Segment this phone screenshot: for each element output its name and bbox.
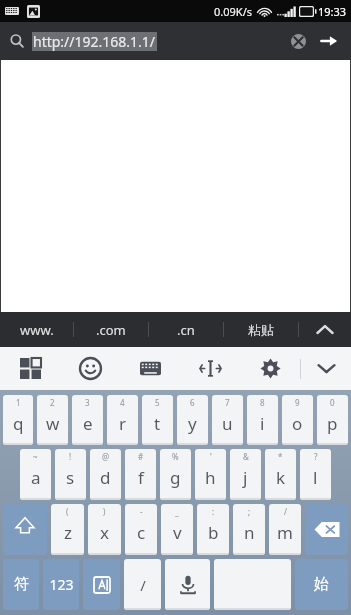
- button[interactable]: c: [125, 504, 157, 555]
- button[interactable]: Expand suggestions: [299, 312, 351, 347]
- button[interactable]: Backspace: [305, 504, 348, 555]
- button[interactable]: f: [125, 449, 156, 500]
- button[interactable]: Go: [313, 25, 345, 57]
- button[interactable]: v: [161, 504, 193, 555]
- button[interactable]: p: [317, 395, 348, 445]
- button[interactable]: y: [177, 395, 208, 445]
- button[interactable]: 123: [43, 559, 79, 610]
- button[interactable]: Switch language: [83, 559, 120, 610]
- staticText: x: [100, 521, 109, 544]
- staticText: 3: [85, 397, 90, 408]
- staticText: b: [208, 521, 219, 544]
- button[interactable]: n: [233, 504, 265, 555]
- staticText: 0: [330, 397, 335, 408]
- staticText: f: [138, 466, 144, 489]
- staticText: 粘贴: [248, 322, 274, 338]
- staticText: r: [119, 412, 127, 435]
- button[interactable]: r: [107, 395, 138, 445]
- button[interactable]: .cn: [149, 312, 223, 347]
- staticText: www.: [20, 321, 54, 339]
- staticText: 9: [295, 397, 300, 408]
- staticText: v: [173, 521, 182, 544]
- staticText: k: [276, 466, 286, 489]
- button[interactable]: j: [230, 449, 261, 500]
- button[interactable]: Shift: [3, 504, 47, 555]
- staticText: ;: [248, 506, 251, 517]
- button[interactable]: Settings: [240, 347, 300, 390]
- staticText: ?: [314, 451, 318, 462]
- staticText: *: [278, 451, 283, 462]
- button[interactable]: Clear: [283, 26, 313, 56]
- staticText: :: [212, 506, 215, 517]
- staticText: u: [222, 412, 233, 435]
- staticText: y: [188, 412, 197, 435]
- staticText: 1: [16, 397, 21, 408]
- staticText: .cn: [177, 321, 195, 339]
- button[interactable]: t: [142, 395, 173, 445]
- staticText: 0.09K/s: [214, 4, 252, 19]
- staticText: /: [284, 506, 287, 517]
- staticText: (: [66, 506, 69, 517]
- staticText: ): [103, 506, 106, 517]
- staticText: c: [137, 521, 146, 544]
- button[interactable]: e: [72, 395, 103, 445]
- staticText: %: [172, 451, 179, 462]
- button[interactable]: q: [3, 395, 33, 445]
- button[interactable]: 始: [295, 559, 348, 610]
- button[interactable]: Emoji: [60, 347, 120, 390]
- button[interactable]: Apps: [0, 347, 60, 390]
- staticText: g: [170, 466, 181, 489]
- button[interactable]: l: [300, 449, 331, 500]
- staticText: &: [243, 451, 249, 462]
- button[interactable]: .com: [74, 312, 148, 347]
- staticText: 8: [260, 397, 265, 408]
- button[interactable]: m: [269, 504, 301, 555]
- button[interactable]: u: [212, 395, 243, 445]
- button[interactable]: 粘贴: [224, 312, 298, 347]
- button[interactable]: k: [265, 449, 296, 500]
- button[interactable]: Keyboard layout: [120, 347, 180, 390]
- staticText: @: [102, 451, 110, 462]
- staticText: n: [244, 521, 255, 544]
- staticText: s: [66, 466, 75, 489]
- button[interactable]: a: [20, 449, 51, 500]
- staticText: w: [46, 412, 60, 435]
- button[interactable]: i: [247, 395, 278, 445]
- staticText: 2: [50, 397, 55, 408]
- button[interactable]: x: [88, 504, 121, 555]
- staticText: -: [140, 506, 143, 517]
- staticText: p: [327, 412, 338, 435]
- button[interactable]: o: [282, 395, 313, 445]
- staticText: e: [83, 412, 93, 435]
- button[interactable]: Space: [214, 559, 291, 610]
- button[interactable]: 符: [3, 559, 39, 610]
- button[interactable]: g: [160, 449, 191, 500]
- button[interactable]: www.: [0, 312, 73, 347]
- button[interactable]: Hide keyboard: [301, 347, 351, 390]
- button[interactable]: Move cursor: [180, 347, 240, 390]
- staticText: a: [31, 466, 41, 489]
- staticText: /: [140, 575, 146, 595]
- button[interactable]: h: [195, 449, 226, 500]
- staticText: j: [243, 466, 248, 489]
- staticText: .com: [96, 321, 126, 339]
- staticText: ': [210, 451, 212, 462]
- button[interactable]: /: [124, 559, 161, 610]
- button[interactable]: Voice input: [165, 559, 210, 610]
- staticText: m: [277, 521, 293, 544]
- staticText: _: [175, 506, 179, 517]
- staticText: 符: [14, 575, 29, 594]
- button[interactable]: d: [90, 449, 121, 500]
- staticText: l: [313, 466, 318, 489]
- button[interactable]: b: [197, 504, 229, 555]
- staticText: 始: [314, 575, 329, 594]
- staticText: ~: [33, 451, 38, 462]
- staticText: o: [292, 412, 303, 435]
- staticText: 19:33: [318, 4, 347, 19]
- staticText: t: [154, 412, 161, 435]
- button[interactable]: s: [55, 449, 86, 500]
- button[interactable]: w: [37, 395, 68, 445]
- button[interactable]: z: [51, 504, 84, 555]
- staticText: 123: [49, 575, 74, 594]
- staticText: http://192.168.1.1/: [33, 32, 156, 51]
